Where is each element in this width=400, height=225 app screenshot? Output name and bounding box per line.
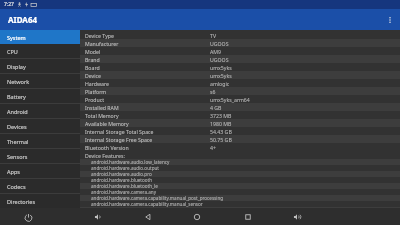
button[interactable]: Platform <box>80 87 400 95</box>
staticText: Device Features: <box>85 152 125 159</box>
button[interactable]: Hardware <box>80 79 400 87</box>
staticText: android.hardware.bluetooth_le <box>91 183 158 189</box>
staticText: Sensors <box>7 153 28 160</box>
button[interactable]: Volume down <box>90 209 106 225</box>
staticText: Brand <box>85 56 100 63</box>
button[interactable]: Manufacturer <box>80 39 400 47</box>
staticText: Directories <box>7 198 36 205</box>
button[interactable]: Recents <box>240 209 256 225</box>
staticText: Codecs <box>7 183 26 190</box>
button[interactable]: More options <box>380 9 400 30</box>
button[interactable]: Apps <box>0 164 80 178</box>
staticText: Model <box>85 48 101 55</box>
button[interactable]: Home <box>189 209 205 225</box>
button[interactable]: Volume up <box>289 209 305 225</box>
staticText: Hardware <box>85 80 109 87</box>
staticText: umx5yks <box>210 72 232 79</box>
staticText: android.hardware.audio.output <box>91 165 159 171</box>
button[interactable]: Codecs <box>0 179 80 193</box>
staticText: android.hardware.audio.low_latency <box>91 159 170 165</box>
staticText: Manufacturer <box>85 40 119 47</box>
button[interactable]: Directories <box>0 194 80 208</box>
staticText: Bluetooth Version <box>85 144 129 151</box>
staticText: UGOOS <box>210 40 229 47</box>
staticText: s6 <box>210 88 216 95</box>
staticText: 4+ <box>210 144 216 151</box>
staticText: umx5yks <box>210 64 232 71</box>
staticText: android.hardware.camera.capability.manua… <box>91 195 224 201</box>
staticText: Network <box>7 78 30 85</box>
staticText: UGOOS <box>210 56 229 63</box>
staticText: AM9 <box>210 48 221 55</box>
button[interactable]: Board <box>80 63 400 71</box>
staticText: umx5yks_arm64 <box>210 96 250 103</box>
button[interactable]: Installed RAM <box>80 103 400 111</box>
staticText: Available Memory <box>85 120 129 127</box>
staticText: Thermal <box>7 138 29 145</box>
button[interactable]: Device Type <box>80 31 400 39</box>
staticText: Board <box>85 64 100 71</box>
button[interactable]: CPU <box>0 44 80 58</box>
staticText: CPU <box>7 48 18 55</box>
staticText: Devices <box>7 123 27 130</box>
button[interactable]: Total Memory <box>80 111 400 119</box>
button[interactable]: Available Memory <box>80 119 400 127</box>
staticText: 7:27 <box>4 1 14 8</box>
staticText: Battery <box>7 93 26 100</box>
staticText: System <box>7 34 26 41</box>
staticText: Internal Storage Free Space <box>85 136 153 143</box>
button[interactable]: Brand <box>80 55 400 63</box>
staticText: Product <box>85 96 105 103</box>
staticText: android.hardware.bluetooth <box>91 177 153 183</box>
button[interactable]: Internal Storage Free Space <box>80 135 400 143</box>
staticText: Installed RAM <box>85 104 119 111</box>
staticText: 3723 MB <box>210 112 232 119</box>
button[interactable]: Power <box>20 209 36 225</box>
staticText: 1980 MB <box>210 120 232 127</box>
button[interactable]: Display <box>0 59 80 73</box>
staticText: Total Memory <box>85 112 119 119</box>
staticText: android.hardware.audio.pro <box>91 171 152 177</box>
staticText: 50.75 GB <box>210 136 232 143</box>
staticText: Device Type <box>85 32 114 39</box>
button[interactable]: Device <box>80 71 400 79</box>
staticText: Android <box>7 108 28 115</box>
staticText: amlogic <box>210 80 230 87</box>
button[interactable]: Internal Storage Total Space <box>80 127 400 135</box>
staticText: android.hardware.camera.capability.manua… <box>91 201 203 207</box>
staticText: TV <box>210 32 216 39</box>
button[interactable]: Devices <box>0 119 80 133</box>
button[interactable]: Android <box>0 104 80 118</box>
button[interactable]: Model <box>80 47 400 55</box>
button[interactable]: System <box>0 30 80 44</box>
staticText: Display <box>7 63 26 70</box>
button[interactable]: Battery <box>0 89 80 103</box>
button[interactable]: Sensors <box>0 149 80 163</box>
staticText: AIDA64 <box>8 14 38 25</box>
button[interactable]: Back <box>140 209 156 225</box>
staticText: Platform <box>85 88 107 95</box>
staticText: Internal Storage Total Space <box>85 128 154 135</box>
button[interactable]: Product <box>80 95 400 103</box>
staticText: Apps <box>7 168 20 175</box>
staticText: 4 GB <box>210 104 222 111</box>
button[interactable]: Network <box>0 74 80 88</box>
staticText: Device <box>85 72 101 79</box>
staticText: 54.43 GB <box>210 128 232 135</box>
staticText: android.hardware.camera.any <box>91 189 156 195</box>
button[interactable]: Thermal <box>0 134 80 148</box>
button[interactable]: Bluetooth Version <box>80 143 400 151</box>
